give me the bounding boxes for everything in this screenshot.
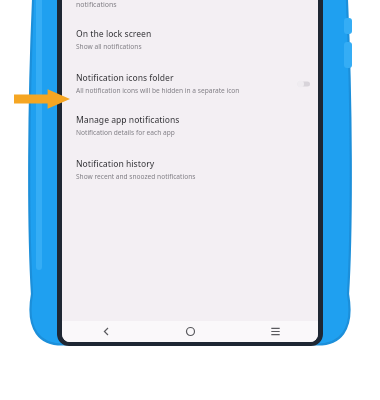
staticText: Show all notifications [76, 42, 142, 51]
staticText: On the lock screen [76, 28, 152, 40]
staticText: Notification icons folder [76, 72, 174, 84]
button[interactable]: Back [62, 321, 148, 342]
button[interactable]: On the lock screen [62, 28, 318, 51]
button[interactable]: notifications [62, 0, 318, 10]
button[interactable]: Notification icons folder [62, 72, 318, 95]
button[interactable]: Home [148, 321, 233, 342]
button[interactable]: Manage app notifications [62, 114, 318, 137]
button[interactable]: Notification icons folder toggle [290, 78, 310, 90]
button[interactable]: Notification history [62, 158, 318, 181]
button[interactable]: Recent apps [233, 321, 318, 342]
staticText: Manage app notifications [76, 114, 180, 126]
staticText: Show recent and snoozed notifications [76, 172, 196, 181]
other: Pointer to Manage app notifications [14, 88, 70, 110]
staticText: All notification icons will be hidden in… [76, 86, 240, 95]
staticText: Notification history [76, 158, 155, 170]
staticText: notifications [76, 0, 117, 10]
staticText: Notification details for each app [76, 128, 175, 137]
